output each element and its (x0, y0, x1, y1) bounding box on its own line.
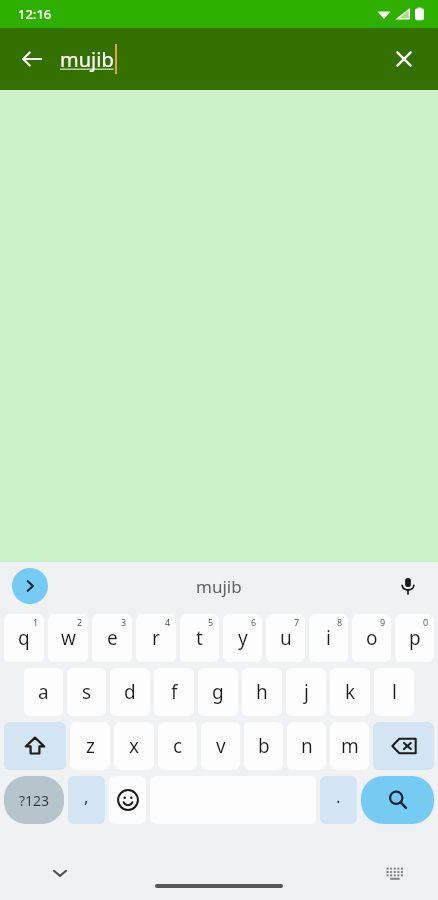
staticText: 1 (33, 616, 39, 628)
staticText: d (124, 679, 136, 705)
staticText: 12:16 (18, 5, 52, 23)
staticText: j (304, 679, 309, 705)
staticText: n (301, 733, 313, 759)
staticText: t (196, 625, 203, 651)
button[interactable]: g (198, 668, 238, 716)
staticText: 5 (208, 616, 214, 628)
button[interactable]: Backspace (373, 722, 434, 770)
button[interactable]: d (110, 668, 150, 716)
button[interactable]: y (223, 614, 262, 662)
staticText: . (336, 785, 341, 808)
staticText: y (238, 625, 248, 651)
button[interactable]: c (158, 722, 197, 770)
staticText: f (171, 679, 178, 705)
button[interactable]: n (287, 722, 326, 770)
button[interactable]: p (395, 614, 434, 662)
staticText: 2 (77, 616, 83, 628)
button[interactable]: f (154, 668, 194, 716)
button[interactable]: mujib (196, 575, 242, 598)
button[interactable]: . (320, 776, 357, 824)
staticText: 8 (337, 616, 343, 628)
button[interactable]: Shift (4, 722, 66, 770)
staticText: u (280, 625, 292, 651)
button[interactable]: Hide keyboard (42, 855, 78, 891)
staticText: v (216, 733, 226, 759)
staticText: h (256, 679, 268, 705)
button[interactable]: ?123 (4, 776, 64, 824)
staticText: 4 (165, 616, 171, 628)
staticText: x (129, 733, 140, 759)
button[interactable]: k (330, 668, 370, 716)
button[interactable]: j (286, 668, 326, 716)
button[interactable]: i (309, 614, 348, 662)
button[interactable]: s (67, 668, 106, 716)
button[interactable]: r (136, 614, 176, 662)
staticText: k (345, 679, 356, 705)
button[interactable]: Voice input (390, 568, 426, 604)
button[interactable]: m (330, 722, 369, 770)
button[interactable]: q (4, 614, 44, 662)
staticText: , (84, 785, 89, 808)
button[interactable]: z (70, 722, 110, 770)
staticText: e (107, 625, 118, 651)
staticText: q (18, 625, 30, 651)
button[interactable]: h (242, 668, 282, 716)
staticText: p (409, 625, 421, 651)
staticText: 6 (251, 616, 257, 628)
staticText: s (82, 679, 92, 705)
staticText: 0 (423, 616, 429, 628)
staticText: c (173, 733, 183, 759)
staticText: b (258, 733, 270, 759)
button[interactable]: Emoji (109, 776, 146, 824)
staticText: g (212, 679, 224, 705)
button[interactable]: , (68, 776, 105, 824)
staticText: w (61, 625, 76, 651)
button[interactable]: v (201, 722, 240, 770)
button[interactable]: Clear search (382, 37, 426, 81)
button[interactable]: x (114, 722, 154, 770)
button[interactable]: Back (10, 37, 54, 81)
staticText: r (152, 625, 160, 651)
button[interactable]: o (352, 614, 391, 662)
button[interactable]: w (48, 614, 88, 662)
button[interactable]: l (374, 668, 414, 716)
button[interactable]: Change keyboard (378, 856, 412, 890)
button[interactable]: Expand suggestions (12, 568, 48, 604)
staticText: mujib (60, 46, 114, 73)
staticText: o (366, 625, 378, 651)
staticText: a (38, 679, 49, 705)
staticText: m (341, 733, 359, 759)
button[interactable]: t (180, 614, 219, 662)
button[interactable]: Search (361, 776, 434, 824)
staticText: l (392, 679, 397, 705)
button[interactable]: u (266, 614, 305, 662)
staticText: 3 (121, 616, 127, 628)
staticText: 7 (294, 616, 300, 628)
button[interactable]: a (24, 668, 63, 716)
staticText: z (86, 733, 95, 759)
staticText: 9 (380, 616, 386, 628)
staticText: ?123 (19, 791, 50, 810)
button[interactable]: e (92, 614, 132, 662)
staticText: i (326, 625, 331, 651)
button[interactable]: b (244, 722, 283, 770)
